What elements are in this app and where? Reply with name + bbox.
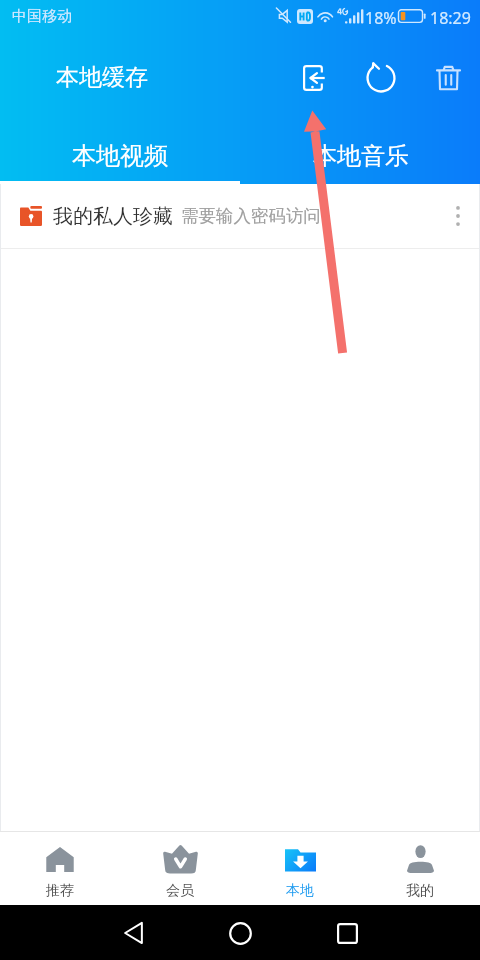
staticText: 我的私人珍藏 <box>53 204 173 229</box>
button[interactable]: More options <box>436 194 480 238</box>
button[interactable]: Refresh <box>357 54 405 102</box>
staticText: 本地音乐 <box>313 141 409 171</box>
button[interactable]: 会员 <box>120 832 240 905</box>
button[interactable]: 本地音乐 <box>240 120 480 184</box>
button[interactable]: 本地视频 <box>0 120 240 184</box>
staticText: 18% <box>365 7 397 29</box>
staticText: 需要输入密码访问 <box>181 205 321 227</box>
button[interactable]: 本地 <box>240 832 360 905</box>
button[interactable]: Delete <box>424 54 472 102</box>
staticText: 本地视频 <box>72 141 168 171</box>
button[interactable]: 推荐 <box>0 832 120 905</box>
staticText: 本地 <box>286 882 314 900</box>
button[interactable]: Back <box>110 910 156 956</box>
button[interactable]: Import to device <box>290 54 338 102</box>
button[interactable]: Recents <box>324 910 370 956</box>
staticText: 中国移动 <box>12 7 72 26</box>
button[interactable]: Home <box>217 910 263 956</box>
button[interactable]: 我的私人珍藏 <box>0 184 480 248</box>
staticText: 我的 <box>406 882 434 900</box>
staticText: 本地缓存 <box>56 63 148 92</box>
staticText: 18:29 <box>430 7 471 29</box>
staticText: 会员 <box>166 882 194 900</box>
staticText: 推荐 <box>46 882 74 900</box>
button[interactable]: 我的 <box>360 832 480 905</box>
